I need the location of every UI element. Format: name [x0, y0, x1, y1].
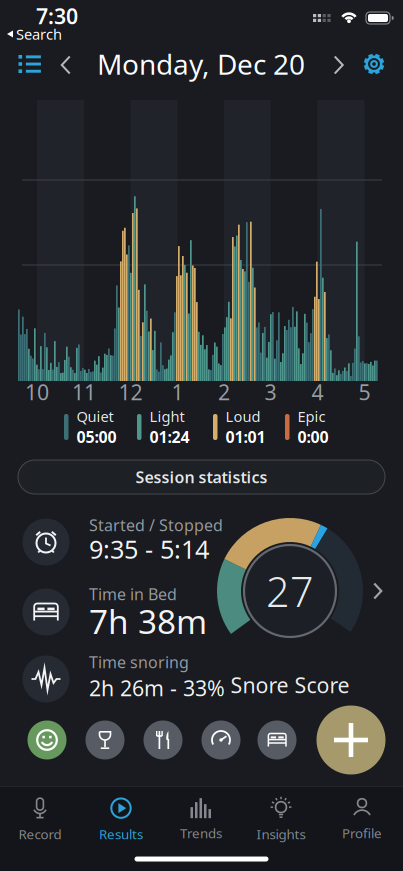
staticText: 0:00: [297, 426, 328, 447]
staticText: 01:24: [149, 426, 189, 447]
staticText: Monday, Dec 20: [97, 45, 305, 83]
staticText: 5: [358, 378, 370, 406]
button[interactable]: Snore Score details: [195, 480, 385, 700]
staticText: Insights: [256, 825, 305, 843]
staticText: Profile: [342, 824, 382, 842]
button[interactable]: Settings: [356, 44, 392, 84]
staticText: Light: [149, 407, 184, 426]
button[interactable]: Sleep factor: [257, 720, 296, 759]
staticText: 4: [311, 378, 323, 406]
button[interactable]: Session list: [12, 45, 48, 85]
staticText: 2h 26m - 33%: [89, 674, 225, 702]
staticText: 12: [118, 378, 142, 406]
staticText: Quiet: [76, 407, 113, 426]
staticText: Session statistics: [135, 466, 267, 488]
button[interactable]: Alcohol factor: [85, 720, 124, 759]
button[interactable]: Next session: [324, 45, 354, 85]
staticText: 7h 38m: [89, 599, 207, 643]
button[interactable]: Record: [2, 794, 78, 846]
staticText: Time snoring: [89, 651, 189, 673]
staticText: 05:00: [76, 426, 116, 447]
staticText: Search: [16, 24, 62, 44]
button[interactable]: Food factor: [143, 720, 182, 759]
staticText: 3: [264, 378, 276, 406]
button[interactable]: Trends: [163, 794, 239, 846]
button[interactable]: Remedies: [201, 720, 240, 759]
staticText: 1: [171, 378, 183, 406]
button[interactable]: Rate how you feel: [27, 720, 66, 759]
staticText: Results: [99, 825, 143, 843]
staticText: Time in Bed: [89, 583, 177, 605]
staticText: Started / Stopped: [89, 514, 223, 536]
staticText: 10: [25, 378, 49, 406]
staticText: 9:35 - 5:14: [89, 532, 209, 566]
staticText: 11: [72, 378, 96, 406]
button[interactable]: Back to Search: [7, 26, 97, 42]
button[interactable]: Previous session: [51, 45, 81, 85]
button[interactable]: Insights: [243, 794, 319, 846]
staticText: Epic: [297, 407, 325, 426]
staticText: 01:01: [225, 426, 265, 447]
staticText: 2: [218, 378, 230, 406]
staticText: Record: [18, 825, 61, 843]
staticText: Trends: [180, 824, 222, 842]
button[interactable]: Add factors: [316, 705, 385, 774]
staticText: Loud: [225, 407, 260, 426]
button[interactable]: Results: [83, 794, 159, 846]
staticText: 7:30: [36, 2, 78, 30]
staticText: 27: [266, 564, 314, 618]
button[interactable]: Profile: [324, 794, 400, 846]
button[interactable]: Session statistics: [18, 460, 385, 494]
staticText: Snore Score: [230, 671, 349, 699]
